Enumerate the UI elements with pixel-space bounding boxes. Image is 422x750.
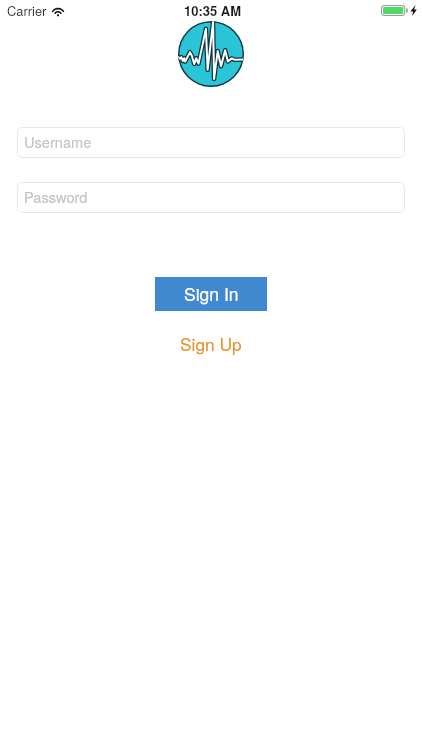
staticText: 10:35 AM xyxy=(184,1,242,20)
other: App logo xyxy=(178,21,244,87)
staticText: Sign In xyxy=(184,281,239,306)
staticText: Carrier xyxy=(7,1,47,19)
button[interactable]: Username xyxy=(17,127,405,158)
button[interactable]: Sign Up xyxy=(161,328,261,358)
other: Battery full xyxy=(381,5,408,16)
button[interactable]: Sign In xyxy=(155,277,267,311)
other: Charging xyxy=(410,5,417,16)
staticText: Password xyxy=(24,186,88,207)
staticText: Sign Up xyxy=(180,331,242,356)
staticText: Username xyxy=(24,131,92,152)
other: Wi-Fi xyxy=(51,6,65,16)
button[interactable]: Password xyxy=(17,182,405,213)
